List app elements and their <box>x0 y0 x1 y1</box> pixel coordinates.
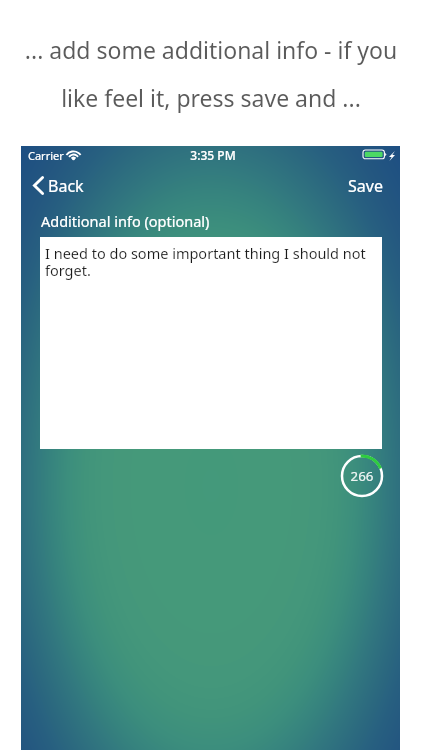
button[interactable]: Back <box>25 170 107 200</box>
staticText: Back <box>48 175 84 197</box>
staticText: Save <box>348 175 383 197</box>
staticText: ... add some additional info - if you li… <box>0 34 422 113</box>
staticText: Carrier <box>28 148 64 163</box>
staticText: Additional info (optional) <box>41 211 210 231</box>
button[interactable]: I need to do some important thing I shou… <box>40 237 382 449</box>
staticText: 3:35 PM <box>181 147 245 163</box>
staticText: I need to do some important thing I shou… <box>45 243 369 280</box>
button[interactable]: Characters remaining <box>341 455 383 497</box>
button[interactable]: Save <box>338 170 392 200</box>
staticText: 266 <box>341 467 383 485</box>
